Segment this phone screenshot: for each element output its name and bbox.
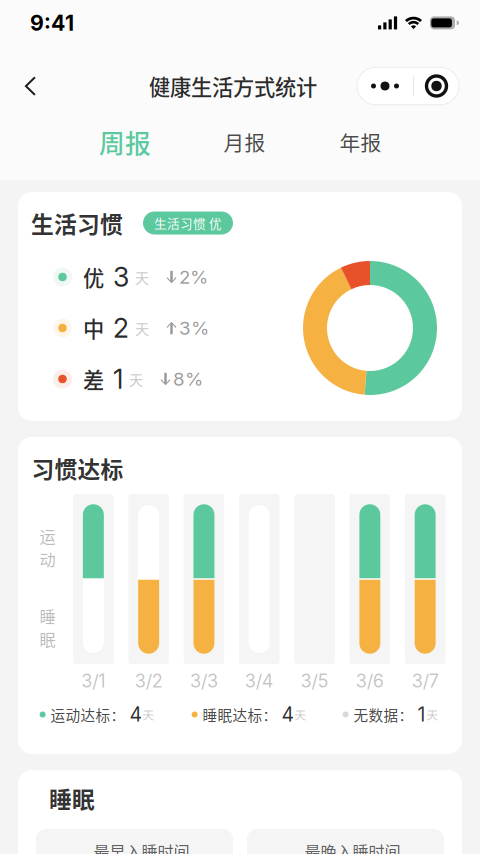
staticText: 1 [113, 363, 123, 395]
staticText: 天 [135, 318, 149, 338]
staticText: 月报 [223, 127, 265, 157]
staticText: 2 [113, 312, 129, 344]
button[interactable]: More [357, 67, 413, 104]
staticText: 3/3 [190, 670, 218, 692]
staticText: 1 [418, 703, 426, 726]
staticText: 运 [40, 524, 56, 548]
staticText: 3/4 [245, 670, 274, 692]
staticText: 天 [295, 706, 307, 723]
button[interactable]: 周报 [99, 119, 150, 165]
staticText: 中 [83, 313, 104, 343]
staticText: 生活习惯 优 [154, 214, 222, 232]
staticText: 周报 [99, 123, 151, 161]
staticText: 3/2 [135, 670, 163, 692]
staticText: 3 [113, 261, 129, 293]
button[interactable]: Back [8, 64, 52, 108]
staticText: 3/7 [412, 670, 439, 692]
staticText: 4 [282, 703, 294, 726]
staticText: 最早入睡时间 [93, 839, 189, 854]
staticText: 2% [179, 266, 208, 288]
staticText: 优 [83, 262, 104, 292]
staticText: 天 [129, 369, 143, 389]
staticText: 最晚入睡时间 [304, 839, 400, 854]
staticText: 年报 [339, 127, 381, 157]
staticText: 3/5 [300, 670, 328, 692]
staticText: 3/1 [81, 670, 105, 692]
staticText: 健康生活方式统计 [149, 71, 317, 101]
button[interactable]: 月报 [224, 119, 265, 165]
staticText: 天 [135, 267, 149, 287]
staticText: 天 [143, 706, 155, 723]
staticText: 无数据： [354, 704, 414, 725]
staticText: 动 [40, 547, 56, 571]
staticText: 差 [83, 364, 104, 394]
button[interactable]: 年报 [340, 119, 381, 165]
staticText: 运动达标： [51, 704, 126, 725]
staticText: 睡眠 [49, 781, 95, 814]
staticText: 3/6 [356, 670, 384, 692]
button[interactable]: Close [414, 67, 459, 104]
staticText: 3% [179, 317, 209, 339]
staticText: 眠 [40, 627, 56, 651]
staticText: 8% [173, 368, 203, 390]
staticText: 睡 [40, 604, 56, 628]
staticText: 天 [427, 706, 439, 723]
staticText: 4 [130, 703, 142, 726]
staticText: 生活习惯 [31, 206, 123, 239]
staticText: 习惯达标 [32, 451, 124, 484]
staticText: 睡眠达标： [203, 704, 278, 725]
staticText: 9:41 [30, 10, 74, 36]
